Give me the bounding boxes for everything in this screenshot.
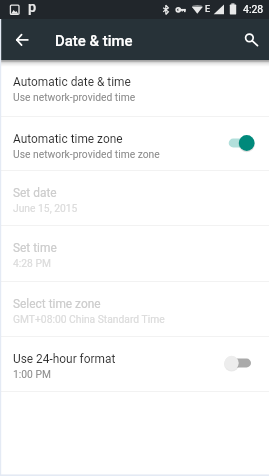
button[interactable]: Back	[4, 20, 36, 52]
staticText: Automatic time zone	[13, 132, 123, 146]
button[interactable]: Automatic date & time	[0, 60, 269, 116]
staticText: Use network-provided time	[13, 91, 136, 103]
button[interactable]: Automatic time zone	[0, 117, 269, 170]
button[interactable]: Use 24-hour format	[0, 337, 269, 391]
button[interactable]: Set time	[0, 226, 269, 281]
staticText: p	[28, 0, 37, 16]
staticText: Automatic date & time	[13, 75, 131, 89]
button[interactable]: Use 24-hour format	[221, 352, 259, 374]
button[interactable]: Automatic time zone	[221, 132, 259, 154]
staticText: Use network-provided time zone	[13, 148, 160, 160]
staticText: GMT+08:00 China Standard Time	[13, 313, 165, 325]
staticText: Set date	[13, 186, 57, 200]
staticText: Use 24-hour format	[13, 352, 116, 366]
button[interactable]: Search	[237, 20, 269, 52]
staticText: Date & time	[55, 32, 133, 49]
button[interactable]: Select time zone	[0, 282, 269, 336]
staticText: June 15, 2015	[13, 202, 78, 214]
staticText: E	[205, 4, 211, 15]
button[interactable]: Set date	[0, 171, 269, 225]
staticText: Set time	[13, 241, 57, 255]
staticText: 1:00 PM	[13, 368, 51, 380]
staticText: 4:28 PM	[13, 257, 51, 269]
staticText: 4:28	[243, 3, 264, 15]
staticText: Select time zone	[13, 297, 101, 311]
